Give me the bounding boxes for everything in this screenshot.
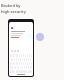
staticText: high security bbox=[1, 9, 26, 14]
staticText: Backed by bbox=[1, 3, 21, 8]
